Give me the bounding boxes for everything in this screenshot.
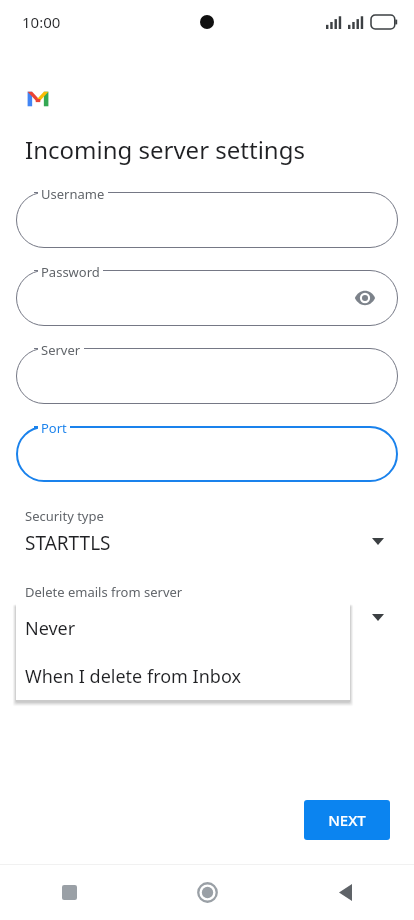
staticText: 10:00 [22, 12, 61, 32]
button[interactable]: Delete emails from server [16, 580, 398, 642]
staticText: Server [41, 341, 81, 359]
staticText: Port [41, 419, 67, 437]
staticText: When I delete from Inbox [25, 664, 241, 689]
button[interactable]: NEXT [304, 800, 390, 840]
staticText: Security type [25, 507, 104, 525]
button[interactable]: Username [16, 192, 398, 248]
button[interactable]: Security type [16, 504, 398, 566]
button[interactable]: Port [16, 426, 398, 482]
button[interactable]: Password [16, 270, 398, 326]
staticText: Never [25, 606, 78, 632]
staticText: Incoming server settings [25, 133, 305, 166]
staticText: Username [41, 185, 105, 203]
button[interactable]: Recents [0, 864, 138, 920]
staticText: NEXT [328, 810, 366, 830]
staticText: Delete emails from server [25, 583, 183, 601]
button[interactable]: Back [276, 864, 414, 920]
staticText: STARTTLS [25, 530, 111, 556]
button[interactable]: Server [16, 348, 398, 404]
staticText: Password [41, 263, 100, 281]
button[interactable]: Never [16, 604, 350, 652]
button[interactable]: Show password [350, 283, 380, 313]
staticText: Never [25, 616, 76, 641]
button[interactable]: When I delete from Inbox [16, 652, 350, 700]
button[interactable]: Home [138, 864, 276, 920]
